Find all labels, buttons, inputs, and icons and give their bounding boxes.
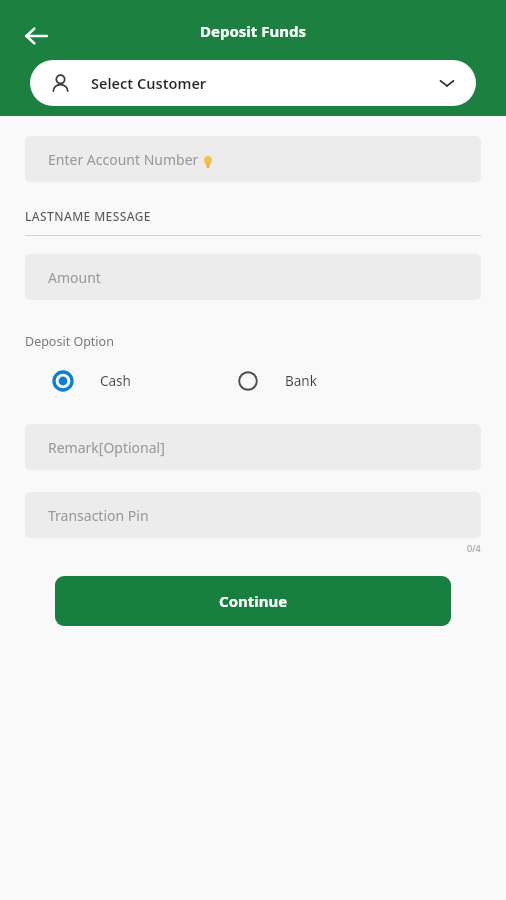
- staticText: Enter Account Number: [48, 150, 199, 169]
- button[interactable]: Continue: [55, 576, 451, 626]
- staticText: Deposit Option: [25, 333, 114, 350]
- staticText: Remark[Optional]: [48, 438, 165, 457]
- button[interactable]: Cash: [52, 364, 131, 398]
- button[interactable]: Back: [14, 14, 58, 58]
- staticText: Select Customer: [91, 73, 207, 93]
- staticText: Bank: [285, 372, 317, 390]
- button[interactable]: Remark[Optional]: [25, 424, 481, 470]
- staticText: Transaction Pin: [48, 506, 149, 525]
- button[interactable]: Amount: [25, 254, 481, 300]
- button[interactable]: Enter Account Number: [25, 136, 481, 182]
- staticText: Cash: [100, 372, 131, 390]
- button[interactable]: Transaction Pin: [25, 492, 481, 538]
- staticText: Continue: [219, 591, 288, 611]
- button[interactable]: Select Customer: [30, 60, 476, 106]
- staticText: Deposit Funds: [200, 21, 306, 41]
- staticText: Amount: [48, 268, 101, 287]
- button[interactable]: Bank: [237, 364, 317, 398]
- staticText: LASTNAME MESSAGE: [25, 208, 151, 224]
- staticText: 0/4: [467, 542, 481, 554]
